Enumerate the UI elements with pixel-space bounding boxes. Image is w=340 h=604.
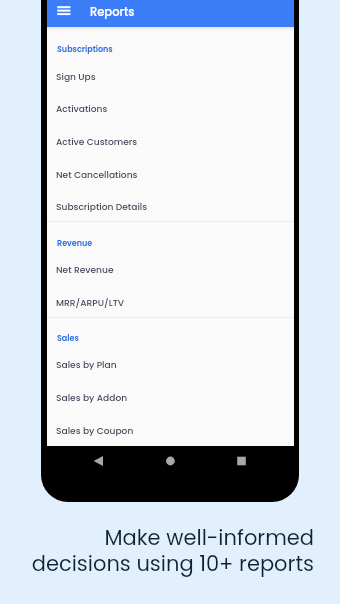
staticText: Active Customers <box>56 135 138 148</box>
button[interactable]: MRR/ARPU/LTV <box>47 284 294 317</box>
button[interactable]: Sales by Addon <box>47 379 294 412</box>
button[interactable]: Sign Ups <box>47 58 294 91</box>
button[interactable]: Net Cancellations <box>47 156 294 189</box>
button[interactable]: Sales by Plan <box>47 346 294 379</box>
staticText: Sales by Addon <box>56 391 128 404</box>
button[interactable]: Net Revenue <box>47 251 294 284</box>
staticText: Reports <box>90 4 135 20</box>
staticText: Subscriptions <box>57 44 113 55</box>
staticText: Sales <box>57 333 79 344</box>
staticText: Subscription Details <box>56 200 148 213</box>
button[interactable]: Active Customers <box>47 123 294 156</box>
staticText: Sign Ups <box>56 70 96 83</box>
button[interactable]: Subscription Details <box>47 188 294 221</box>
staticText: Net Revenue <box>56 263 114 276</box>
staticText: Activations <box>56 102 108 115</box>
button[interactable]: Activations <box>47 90 294 123</box>
staticText: Revenue <box>57 238 93 249</box>
staticText: Sales by Plan <box>56 358 117 371</box>
staticText: Sales by Coupon <box>56 424 134 437</box>
button[interactable]: Sales by Coupon <box>47 412 294 445</box>
button[interactable]: Open navigation menu <box>47 0 74 27</box>
staticText: Net Cancellations <box>56 168 138 181</box>
staticText: Make well-informed decisions using 10+ r… <box>3 523 314 578</box>
staticText: MRR/ARPU/LTV <box>56 296 125 309</box>
